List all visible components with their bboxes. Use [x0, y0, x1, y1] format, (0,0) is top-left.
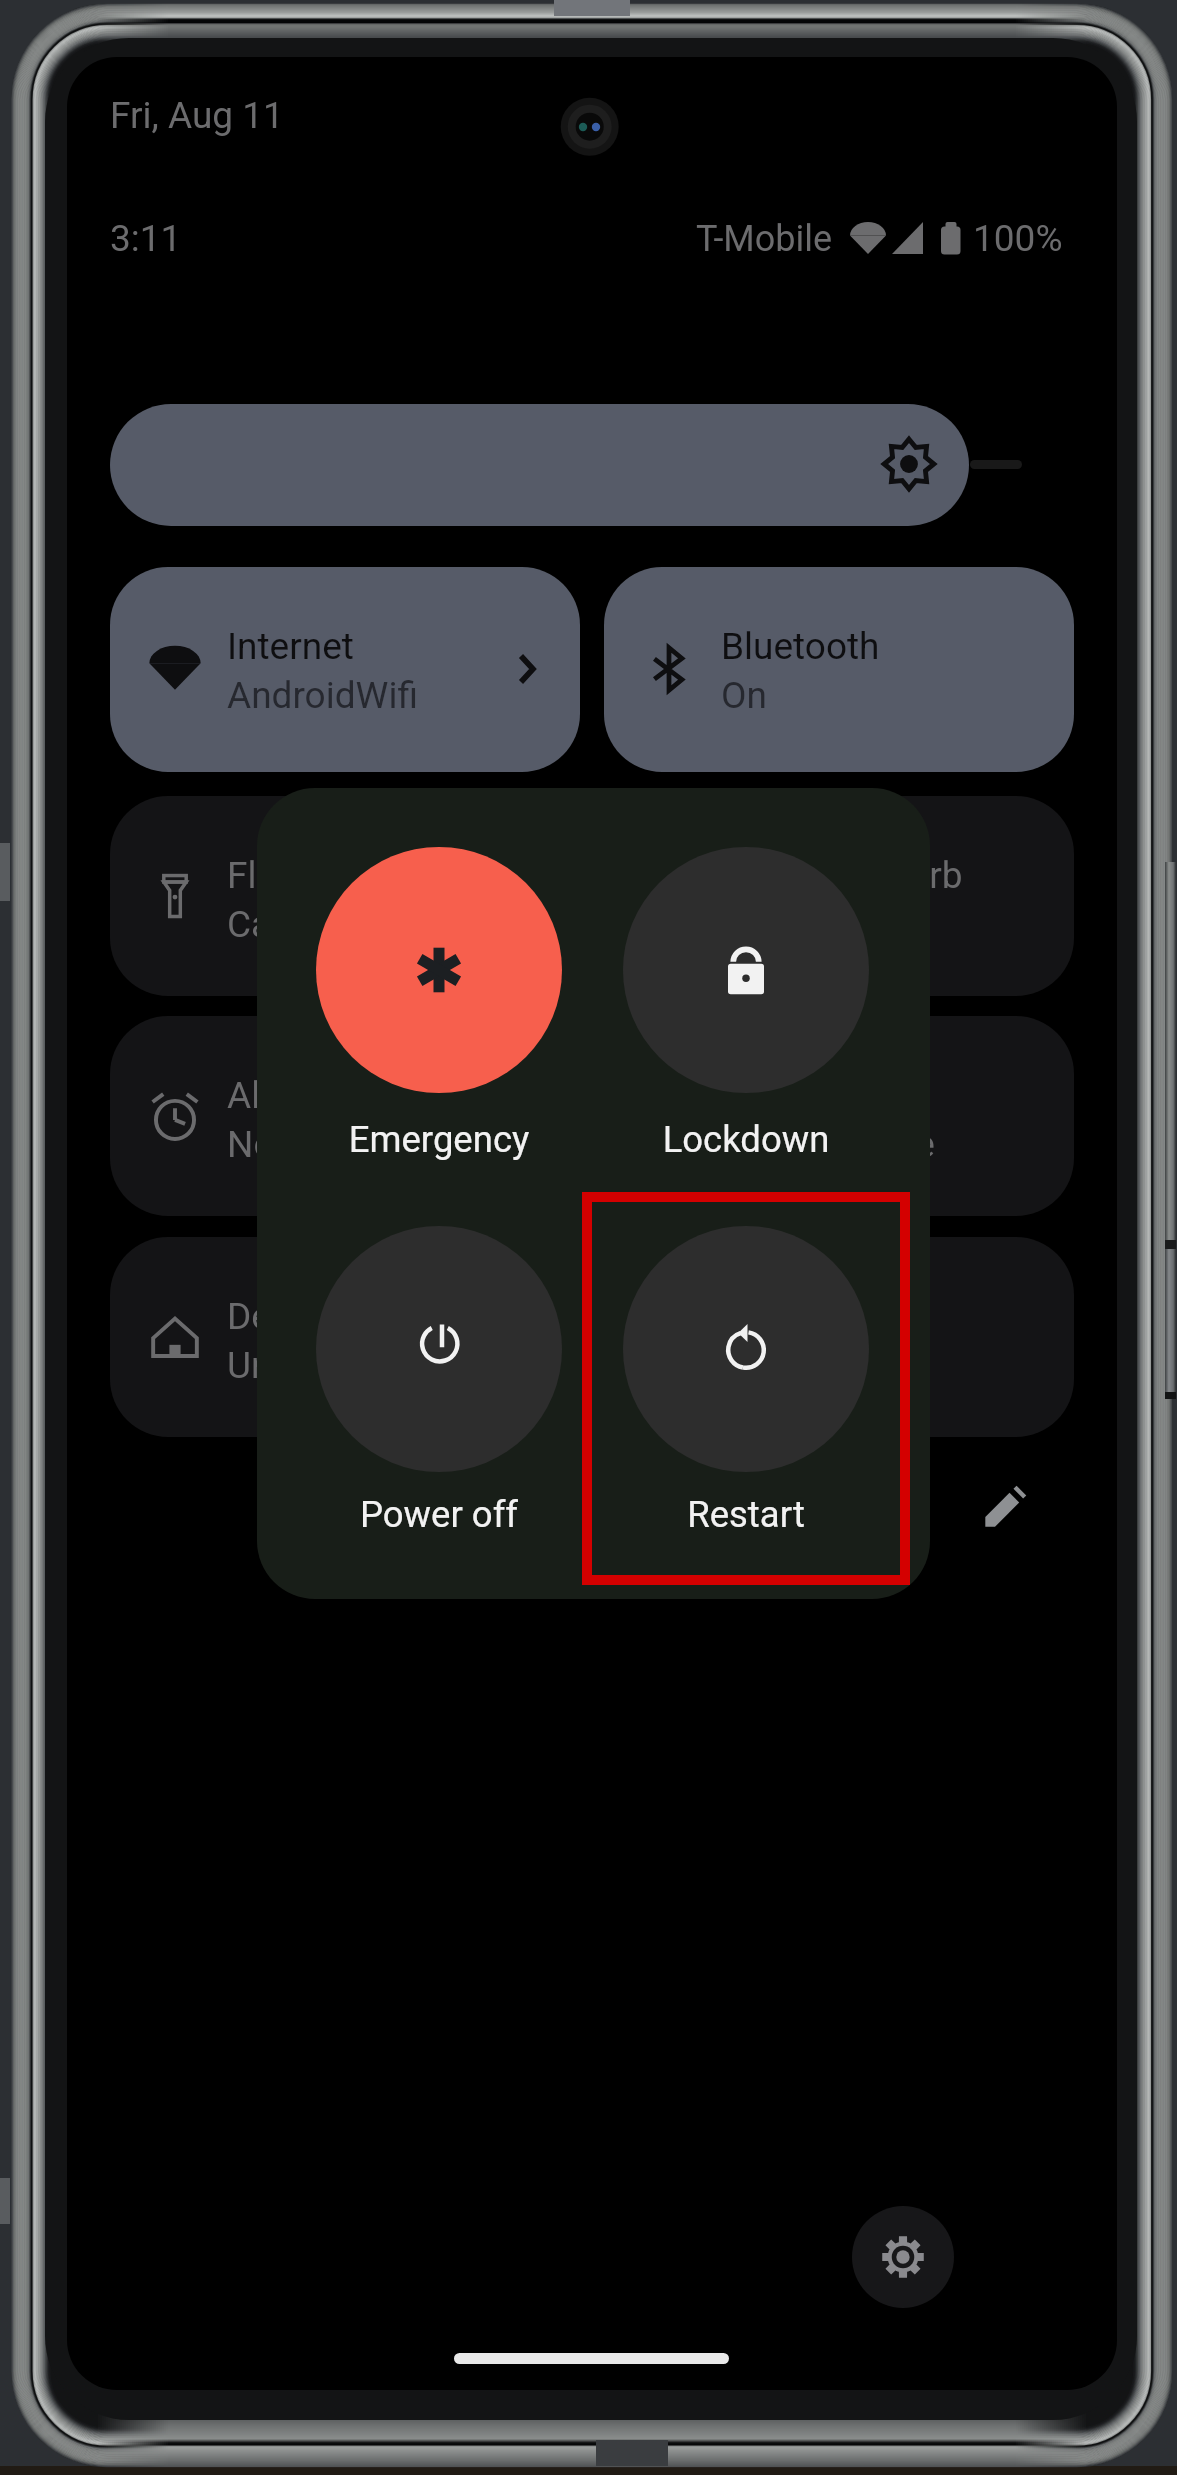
staticText: Do Not Disturb	[721, 854, 963, 897]
staticText: Power off	[299, 1493, 579, 1536]
staticText: Fri, Aug 11	[110, 94, 284, 137]
staticText: Night Light	[721, 1295, 902, 1338]
staticText: 100%	[973, 217, 1063, 260]
staticText: T-Mobile	[696, 218, 833, 260]
button[interactable]: Settings	[852, 2206, 954, 2308]
staticText: None set	[227, 1123, 375, 1166]
button[interactable]: Device controls	[110, 1237, 580, 1437]
staticText: AndroidWifi	[227, 674, 418, 717]
staticText: Internet	[227, 625, 354, 668]
button[interactable]: Brightness	[110, 404, 969, 526]
staticText: Alarm	[227, 1074, 326, 1117]
button[interactable]	[316, 1226, 562, 1472]
staticText: Unavailable	[227, 1344, 417, 1387]
button[interactable]: Bluetooth	[604, 567, 1074, 772]
staticText: Not available	[721, 1123, 935, 1166]
button[interactable]: Internet	[110, 567, 580, 772]
button[interactable]: Flashlight	[110, 796, 580, 996]
staticText: 3:11	[110, 217, 182, 260]
button[interactable]	[316, 847, 562, 1093]
staticText: Mobile data	[721, 1074, 916, 1117]
staticText: Off	[721, 1344, 773, 1387]
staticText: Lockdown	[606, 1118, 886, 1161]
staticText: Camera in use	[227, 903, 463, 946]
button[interactable]: Mobile data	[604, 1016, 1074, 1216]
button[interactable]: Edit tiles	[964, 1464, 1048, 1548]
button[interactable]: Alarm	[110, 1016, 580, 1216]
staticText: Restart	[606, 1493, 886, 1536]
staticText: On	[721, 674, 767, 717]
button[interactable]: Do Not Disturb	[604, 796, 1074, 996]
staticText: Flashlight	[227, 854, 388, 897]
button[interactable]	[623, 1226, 869, 1472]
button[interactable]: Night Light	[604, 1237, 1074, 1437]
button[interactable]	[623, 847, 869, 1093]
staticText: Emergency	[299, 1118, 579, 1161]
staticText: Bluetooth	[721, 625, 880, 668]
staticText: Device controls	[227, 1295, 481, 1338]
